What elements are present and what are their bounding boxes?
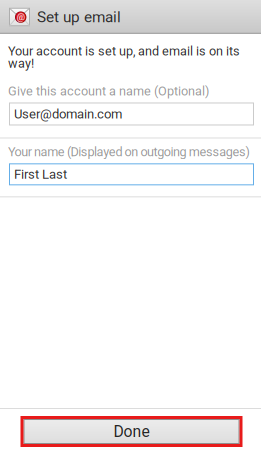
staticText: @ <box>17 12 25 23</box>
staticText: Your account is set up, and email is on … <box>8 45 240 70</box>
button[interactable]: Done <box>19 416 241 447</box>
staticText: Set up email <box>37 8 121 26</box>
staticText: User@domain.com <box>14 106 122 122</box>
staticText: Your name (Displayed on outgoing message… <box>8 144 250 159</box>
staticText: First Last <box>14 167 67 182</box>
staticText: Done <box>113 422 149 441</box>
staticText: Give this account a name (Optional) <box>8 84 209 98</box>
